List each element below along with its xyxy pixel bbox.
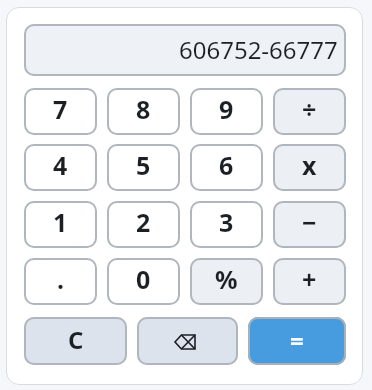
- staticText: 606752-66777: [179, 33, 338, 66]
- button[interactable]: x: [273, 144, 346, 191]
- staticText: 4: [53, 148, 68, 182]
- staticText: 2: [136, 205, 151, 239]
- staticText: =: [290, 324, 304, 357]
- staticText: 5: [136, 148, 151, 182]
- button[interactable]: 7: [24, 88, 97, 135]
- button[interactable]: 4: [24, 144, 97, 191]
- button[interactable]: C: [24, 317, 127, 365]
- staticText: 8: [136, 92, 151, 126]
- button[interactable]: 606752-66777: [24, 24, 346, 76]
- button[interactable]: =: [248, 317, 346, 365]
- staticText: 1: [53, 205, 68, 239]
- staticText: %: [215, 262, 238, 296]
- staticText: 6: [219, 148, 234, 182]
- staticText: 7: [53, 92, 68, 126]
- staticText: C: [68, 323, 84, 356]
- button[interactable]: .: [24, 258, 97, 305]
- staticText: .: [57, 262, 65, 296]
- staticText: ÷: [302, 92, 317, 126]
- button[interactable]: 3: [190, 201, 263, 248]
- button[interactable]: 1: [24, 201, 97, 248]
- button[interactable]: [137, 317, 238, 365]
- staticText: 0: [136, 262, 151, 296]
- button[interactable]: 6: [190, 144, 263, 191]
- button[interactable]: −: [273, 201, 346, 248]
- staticText: 3: [219, 205, 234, 239]
- staticText: +: [302, 262, 317, 296]
- button[interactable]: 8: [107, 88, 180, 135]
- button[interactable]: 2: [107, 201, 180, 248]
- button[interactable]: ÷: [273, 88, 346, 135]
- button[interactable]: %: [190, 258, 263, 305]
- button[interactable]: 9: [190, 88, 263, 135]
- button[interactable]: +: [273, 258, 346, 305]
- staticText: −: [302, 205, 317, 239]
- button[interactable]: 5: [107, 144, 180, 191]
- staticText: x: [302, 148, 317, 182]
- button[interactable]: 0: [107, 258, 180, 305]
- staticText: 9: [219, 92, 234, 126]
